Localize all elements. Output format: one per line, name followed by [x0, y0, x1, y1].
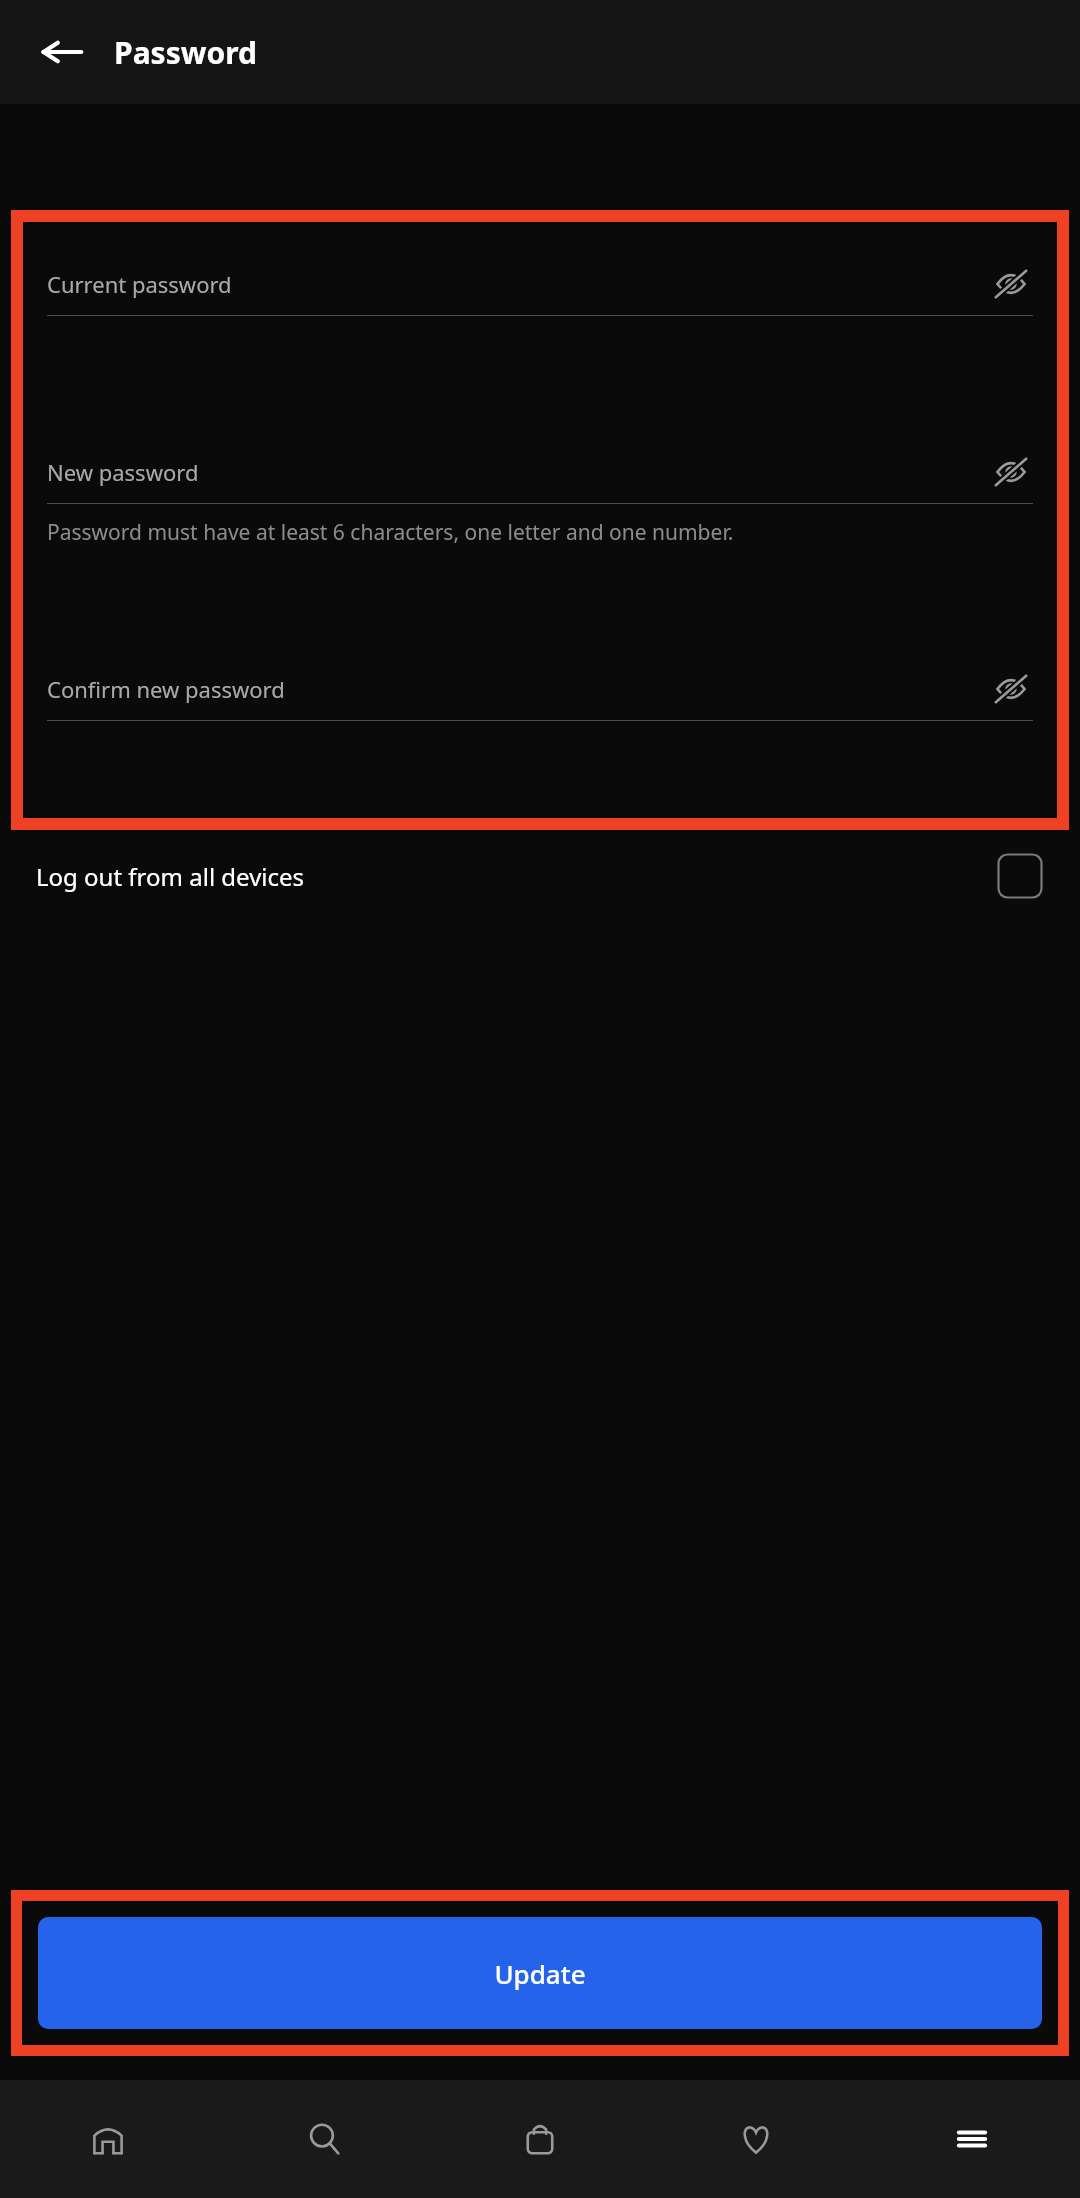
button[interactable]: Log out from all devices checkbox — [996, 852, 1044, 900]
button[interactable]: Back — [24, 14, 100, 90]
button[interactable]: Current password — [47, 226, 1033, 316]
button[interactable]: Home — [0, 2080, 216, 2198]
button[interactable]: Update — [38, 1917, 1042, 2029]
staticText: Confirm new password — [47, 674, 989, 704]
button[interactable]: Show password — [989, 262, 1033, 306]
staticText: Password — [114, 32, 257, 73]
staticText: Update — [494, 1956, 586, 1991]
staticText: Current password — [47, 269, 989, 299]
staticText: New password — [47, 457, 989, 487]
button[interactable]: Wishlist — [648, 2080, 864, 2198]
button[interactable]: Menu — [864, 2080, 1080, 2198]
button[interactable]: Show password — [989, 667, 1033, 711]
button[interactable]: Bag — [432, 2080, 648, 2198]
button[interactable]: Search — [216, 2080, 432, 2198]
staticText: Log out from all devices — [36, 860, 996, 893]
staticText: Password must have at least 6 characters… — [47, 518, 1033, 547]
button[interactable]: Show password — [989, 450, 1033, 494]
button[interactable]: Log out from all devices — [0, 830, 1080, 922]
button[interactable]: New password — [47, 414, 1033, 504]
button[interactable]: Confirm new password — [47, 631, 1033, 721]
